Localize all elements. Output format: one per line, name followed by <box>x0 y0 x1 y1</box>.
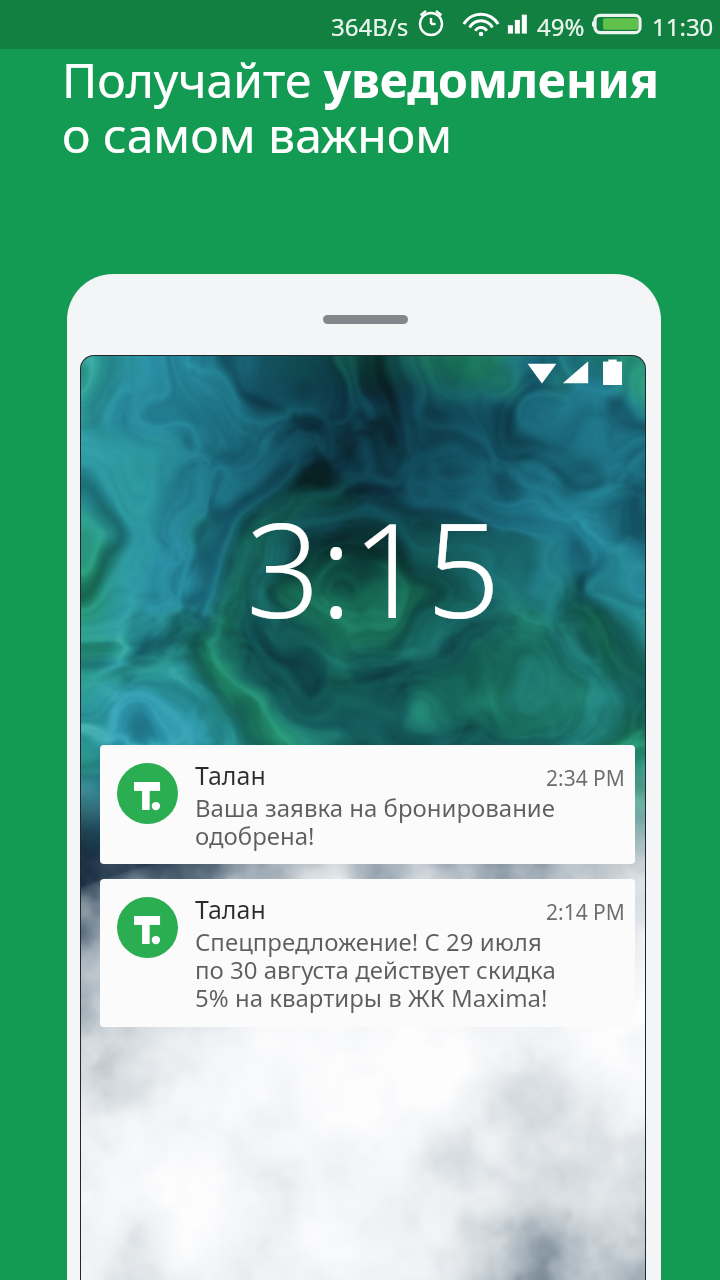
staticText: Спецпредложение! С 29 июля по 30 августа… <box>195 925 556 1014</box>
staticText: 49% <box>537 10 585 43</box>
staticText: 11:30 <box>652 10 714 43</box>
staticText: Талан <box>195 892 266 926</box>
other: Alarm <box>418 10 444 36</box>
other: Mobile signal <box>505 12 529 36</box>
button[interactable]: Талан <box>100 745 635 864</box>
staticText: Ваша заявка на бронирование одобрена! <box>195 791 555 852</box>
staticText: 2:14 PM <box>546 898 625 927</box>
staticText: Получайте уведомления о самом важном <box>62 47 659 167</box>
staticText: 364B/s <box>331 10 409 43</box>
staticText: 2:34 PM <box>546 764 625 793</box>
staticText: 3:15 <box>246 479 501 656</box>
other: Battery 49 percent <box>592 12 642 36</box>
staticText: Талан <box>195 758 266 792</box>
button[interactable]: Талан <box>100 879 635 1027</box>
other: Wi-Fi <box>466 10 496 40</box>
